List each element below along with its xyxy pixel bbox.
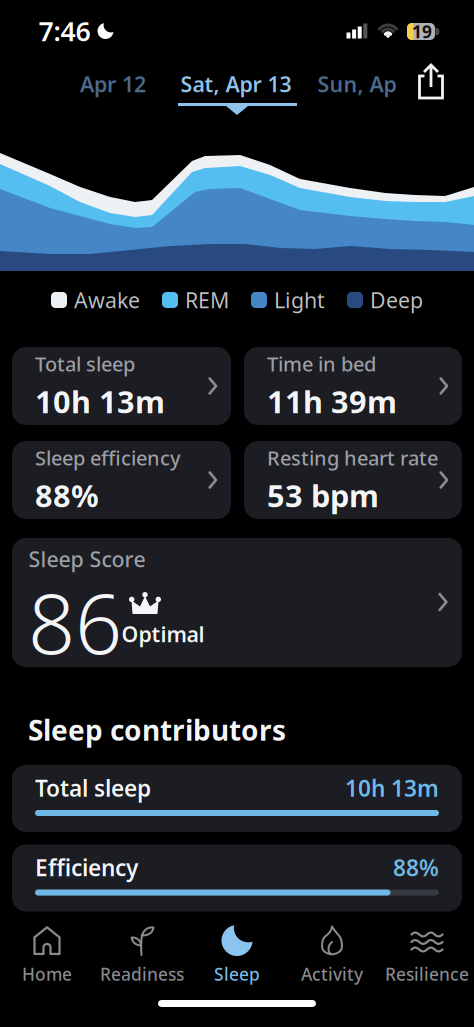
button[interactable]: Sleep (190, 923, 284, 987)
staticText: 10h 13m (35, 381, 165, 422)
staticText: Awake (74, 286, 140, 314)
staticText: Sun, Ap (317, 70, 396, 98)
button[interactable]: Sleep Score (12, 538, 462, 667)
staticText: Light (274, 286, 325, 314)
button[interactable]: Activity (285, 923, 379, 987)
staticText: 53 bpm (267, 475, 379, 516)
button[interactable]: Apr 12 (72, 64, 154, 104)
button[interactable]: Efficiency (12, 844, 462, 911)
staticText: Sleep (214, 962, 260, 985)
button[interactable]: Total sleep (12, 347, 231, 425)
staticText: Activity (301, 962, 363, 985)
staticText: Total sleep (35, 350, 135, 377)
staticText: REM (185, 286, 229, 314)
button[interactable]: Readiness (95, 923, 189, 987)
staticText: Resilience (385, 962, 469, 985)
button[interactable]: Resilience (380, 923, 474, 987)
staticText: 10h 13m (345, 773, 439, 803)
staticText: Deep (370, 286, 423, 314)
staticText: Readiness (100, 962, 184, 985)
staticText: Sleep Score (28, 545, 145, 573)
staticText: Sleep efficiency (35, 444, 181, 471)
button[interactable]: Resting heart rate (244, 441, 462, 519)
staticText: 86 (28, 567, 122, 677)
button[interactable]: Home (0, 923, 94, 987)
staticText: Home (22, 962, 72, 985)
staticText: 88% (393, 852, 439, 882)
staticText: Resting heart rate (267, 444, 438, 471)
button[interactable]: Total sleep (12, 765, 462, 832)
staticText: 7:46 (38, 13, 90, 49)
button[interactable]: Sat, Apr 13 (170, 64, 301, 104)
staticText: Total sleep (35, 773, 151, 803)
staticText: 88% (35, 475, 99, 516)
staticText: Sleep contributors (28, 711, 286, 749)
button[interactable]: Sleep efficiency (12, 441, 231, 519)
button[interactable]: Time in bed (244, 347, 462, 425)
staticText: 11h 39m (267, 381, 397, 422)
staticText: 19 (412, 20, 432, 43)
staticText: Time in bed (267, 350, 376, 377)
staticText: Apr 12 (80, 70, 146, 98)
staticText: Optimal (121, 620, 204, 648)
button[interactable]: Share (413, 62, 449, 102)
staticText: Sat, Apr 13 (180, 70, 291, 98)
staticText: Efficiency (35, 852, 138, 882)
button[interactable]: Sun, Ap (317, 70, 396, 98)
